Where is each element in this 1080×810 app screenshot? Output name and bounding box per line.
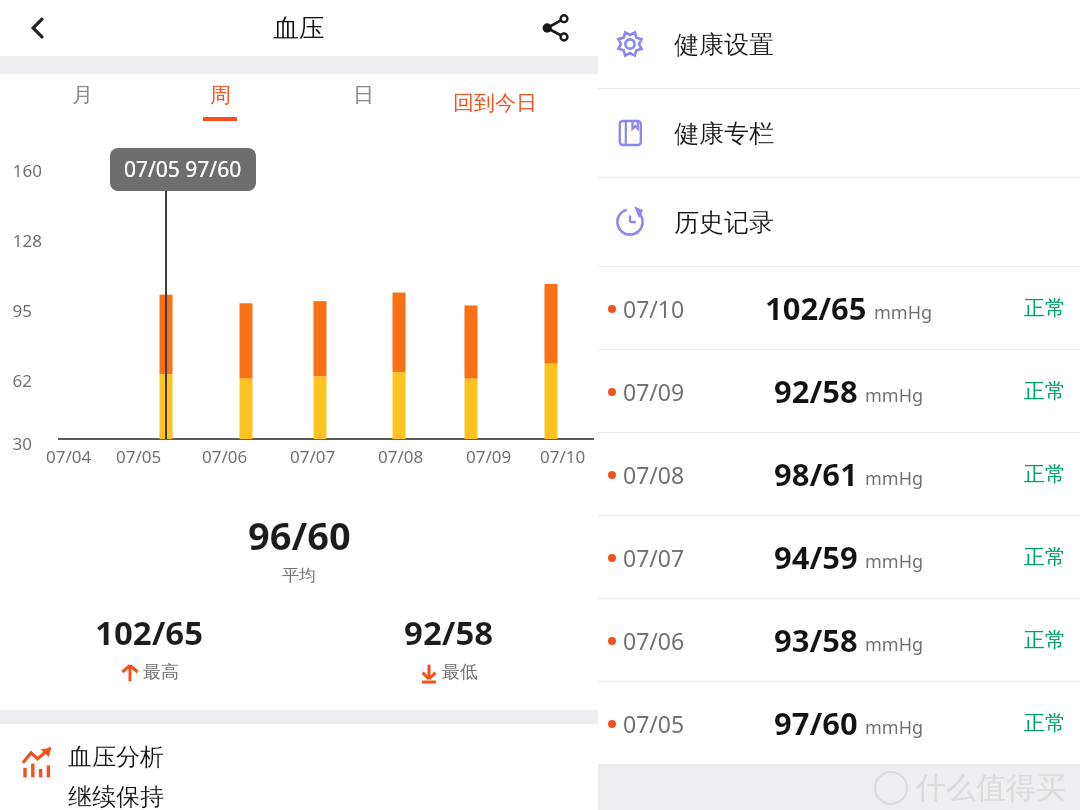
staticText: 血压	[273, 12, 325, 45]
staticText: 97/60	[774, 702, 858, 744]
button[interactable]: 07/07	[598, 516, 1080, 598]
staticText: 102/65	[765, 287, 867, 329]
staticText: 最低	[442, 661, 478, 684]
button[interactable]: 102/65	[0, 610, 299, 684]
staticText: 月	[72, 82, 93, 108]
staticText: 92/58	[774, 370, 858, 412]
staticText: 92/58	[404, 610, 494, 655]
button[interactable]: 回到今日	[440, 78, 550, 128]
staticText: 回到今日	[453, 90, 537, 116]
staticText: mmHg	[865, 632, 924, 657]
staticText: 正常	[1024, 544, 1066, 570]
button[interactable]: 92/58	[299, 610, 598, 684]
staticText: 102/65	[95, 610, 204, 655]
button[interactable]: 07/09	[598, 350, 1080, 432]
button[interactable]: 周	[190, 76, 250, 130]
staticText: 正常	[1024, 461, 1066, 487]
staticText: 健康设置	[674, 29, 774, 60]
staticText: 正常	[1024, 295, 1066, 321]
staticText: 什么值得买	[916, 769, 1066, 807]
staticText: mmHg	[865, 466, 924, 491]
staticText: 07/05 97/60	[124, 155, 242, 184]
staticText: 07/07	[290, 445, 336, 468]
staticText: 正常	[1024, 710, 1066, 736]
staticText: 07/05	[623, 708, 685, 739]
button[interactable]: 健康设置	[598, 0, 1080, 88]
staticText: 日	[353, 82, 374, 108]
staticText: 94/59	[774, 536, 858, 578]
button[interactable]: 历史记录	[598, 178, 1080, 266]
staticText: 正常	[1024, 627, 1066, 653]
staticText: 健康专栏	[674, 118, 774, 149]
button[interactable]: 血压分析	[0, 724, 598, 810]
button[interactable]: Back	[16, 6, 60, 50]
staticText: 07/06	[623, 625, 685, 656]
staticText: 07/05	[116, 445, 162, 468]
button[interactable]: Share	[532, 5, 578, 51]
staticText: 160	[12, 159, 42, 182]
staticText: mmHg	[865, 549, 924, 574]
staticText: 93/58	[774, 619, 858, 661]
staticText: 最高	[143, 661, 179, 684]
staticText: 98/61	[774, 453, 858, 495]
staticText: 周	[210, 82, 231, 108]
button[interactable]: 07/06	[598, 599, 1080, 681]
staticText: 128	[12, 229, 42, 252]
staticText: 07/08	[378, 445, 424, 468]
staticText: mmHg	[865, 383, 924, 408]
staticText: 血压分析	[68, 742, 164, 772]
button[interactable]: 07/05	[598, 682, 1080, 764]
button[interactable]: 07/08	[598, 433, 1080, 515]
staticText: 历史记录	[674, 207, 774, 238]
staticText: 07/10	[623, 293, 685, 324]
button[interactable]: 日	[333, 76, 393, 130]
staticText: 96/60	[248, 509, 351, 561]
staticText: 07/04	[46, 445, 92, 468]
staticText: 07/10	[540, 445, 586, 468]
staticText: 正常	[1024, 378, 1066, 404]
staticText: 95	[12, 299, 32, 322]
staticText: 07/09	[466, 445, 512, 468]
staticText: 07/08	[623, 459, 685, 490]
button[interactable]: 月	[52, 76, 112, 130]
staticText: mmHg	[874, 300, 933, 325]
staticText: 62	[12, 369, 32, 392]
staticText: 30	[12, 432, 32, 455]
staticText: 平均	[282, 565, 316, 586]
staticText: mmHg	[865, 715, 924, 740]
button[interactable]: 07/10	[598, 267, 1080, 349]
staticText: 07/06	[202, 445, 248, 468]
staticText: 继续保持	[68, 782, 164, 810]
staticText: 07/07	[623, 542, 685, 573]
button[interactable]: 健康专栏	[598, 89, 1080, 177]
staticText: 07/09	[623, 376, 685, 407]
